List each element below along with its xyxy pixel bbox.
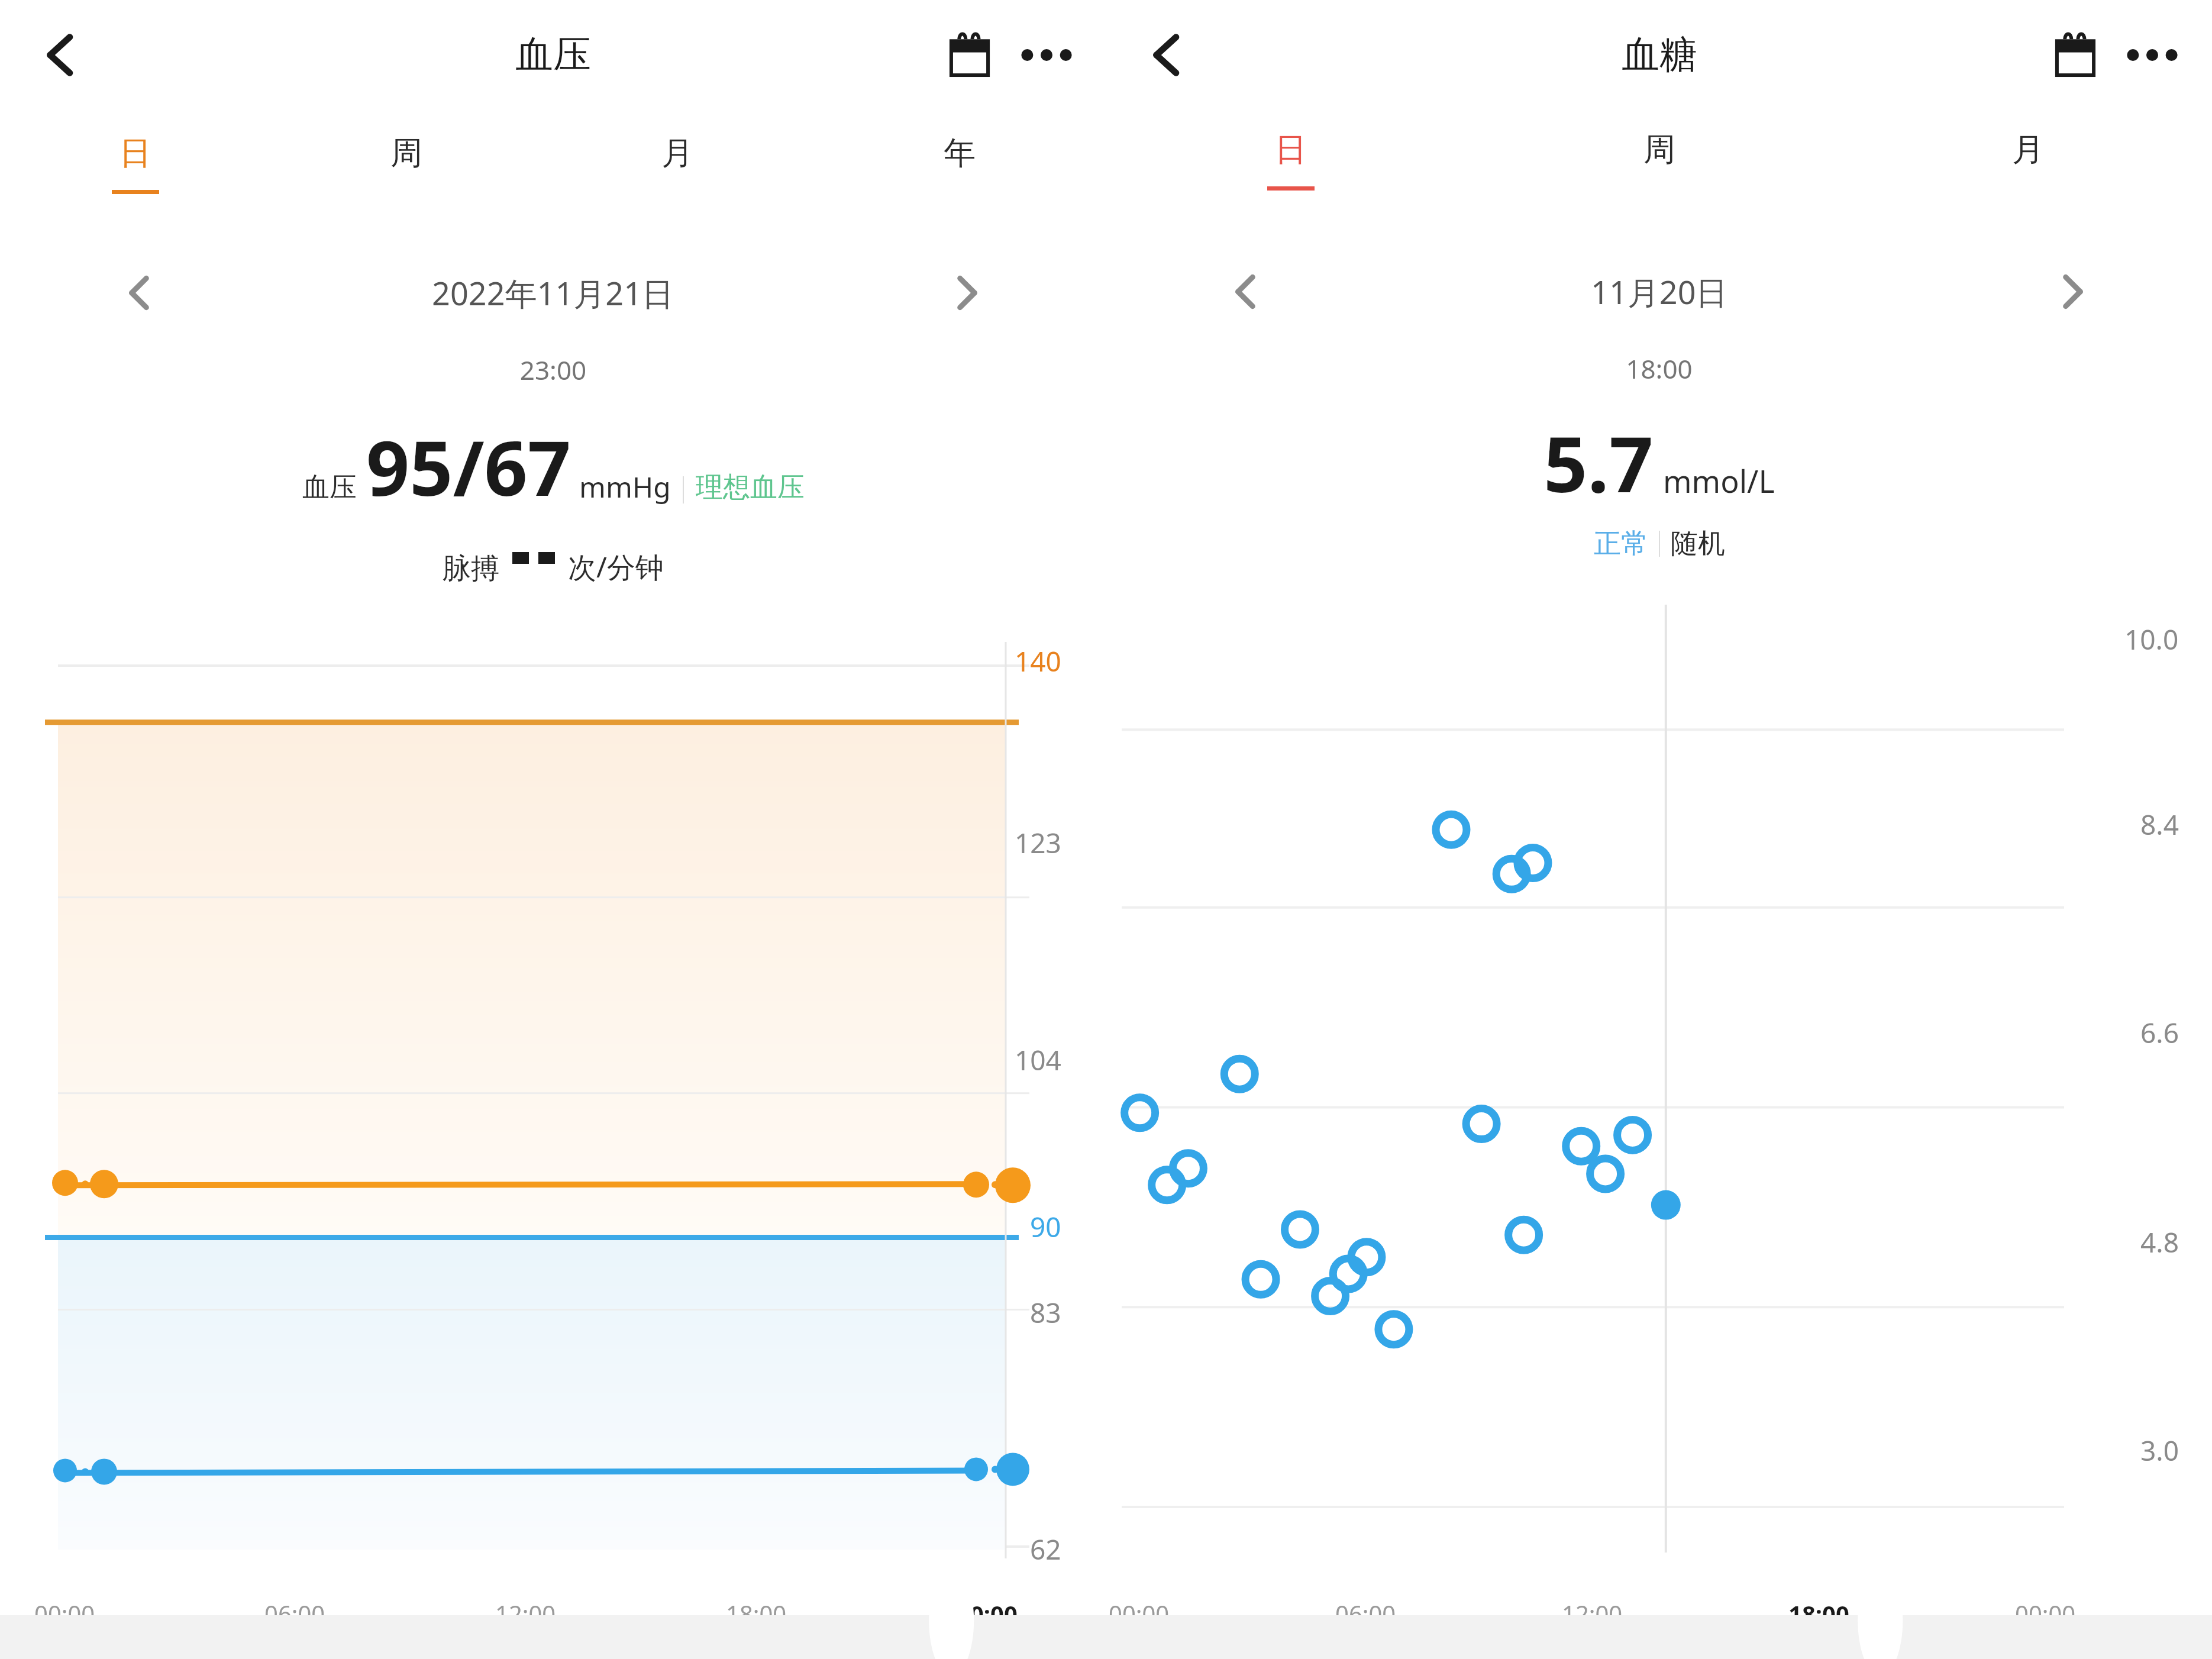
staticText: 月 [2012, 130, 2044, 170]
button[interactable]: Previous day [1213, 259, 1278, 324]
button[interactable]: More options [1008, 17, 1085, 93]
staticText: 123 [1015, 824, 1061, 861]
button[interactable]: Back [25, 20, 96, 91]
staticText: 06:00 [1335, 1597, 1396, 1629]
staticText: 8.4 [2140, 806, 2179, 843]
staticText: mmol/L [1663, 460, 1775, 502]
button[interactable]: 年 [813, 130, 1106, 218]
staticText: 06:00 [264, 1597, 325, 1629]
staticText: 次/分钟 [568, 547, 664, 586]
button[interactable]: Calendar [931, 17, 1008, 93]
button[interactable]: Next day [2040, 259, 2106, 324]
button[interactable]: 周 [1475, 126, 1843, 215]
staticText: 23:00 [0, 352, 1106, 388]
staticText: 10.0 [2124, 621, 2179, 658]
staticText: 18:00 [1106, 351, 2212, 386]
button[interactable]: 周 [271, 130, 542, 218]
staticText: 00:00 [2015, 1597, 2076, 1629]
staticText: 140 [1015, 643, 1061, 680]
staticText: 104 [1015, 1041, 1061, 1079]
staticText: 18:00 [726, 1597, 787, 1629]
staticText: 00:00 [34, 1597, 95, 1629]
staticText: 随机 [1671, 527, 1725, 561]
staticText: 血压 [515, 31, 591, 79]
staticText: 90 [1030, 1208, 1061, 1245]
staticText: 00:00 [957, 1597, 1018, 1629]
staticText: 周 [1643, 130, 1675, 170]
staticText: 12:00 [495, 1597, 556, 1629]
staticText: 正常 [1594, 527, 1648, 561]
staticText: 日 [1275, 130, 1307, 170]
button[interactable]: 月 [542, 130, 813, 218]
staticText: 理想血压 [696, 470, 805, 505]
staticText: 年 [944, 133, 976, 173]
staticText: 4.8 [2140, 1224, 2179, 1261]
button[interactable]: Back [1131, 20, 1202, 91]
staticText: 83 [1030, 1294, 1061, 1331]
button[interactable]: Calendar [2037, 17, 2114, 93]
staticText: 95/67 [366, 415, 571, 518]
staticText: 2022年11月21日 [432, 271, 674, 315]
button[interactable]: More options [2114, 17, 2191, 93]
staticText: 3.0 [2140, 1432, 2179, 1469]
staticText: 月 [661, 133, 693, 173]
button[interactable]: Next day [935, 260, 1000, 325]
button[interactable]: 月 [1843, 126, 2212, 215]
button[interactable]: 日 [1106, 126, 1475, 215]
staticText: 00:00 [1109, 1597, 1170, 1629]
staticText: 6.6 [2140, 1014, 2179, 1051]
staticText: 血糖 [1622, 31, 1697, 79]
staticText: 日 [120, 133, 151, 173]
staticText: 脉搏 [443, 551, 499, 586]
staticText: 12:00 [1562, 1597, 1623, 1629]
staticText: 血压 [302, 470, 357, 505]
staticText: 18:00 [1788, 1597, 1849, 1629]
staticText: mmHg [579, 467, 671, 506]
staticText: 5.7 [1543, 410, 1654, 515]
staticText: 62 [1030, 1531, 1061, 1568]
staticText: 11月20日 [1591, 270, 1728, 314]
button[interactable]: 日 [0, 130, 271, 218]
button[interactable]: Previous day [106, 260, 172, 325]
staticText: 周 [390, 133, 422, 173]
